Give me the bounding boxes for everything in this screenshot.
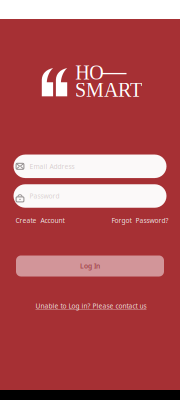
staticText: Forgot Password? xyxy=(111,216,168,225)
staticText: HO xyxy=(75,62,103,84)
staticText: SMART xyxy=(75,79,142,101)
staticText: Email Address xyxy=(29,162,74,171)
staticText: Password xyxy=(29,192,59,200)
button[interactable]: Create Account xyxy=(13,213,66,228)
button[interactable]: Unable to Log in? Please contact us xyxy=(33,299,148,313)
button[interactable]: Forgot Password? xyxy=(109,213,170,228)
staticText: Unable to Log in? Please contact us xyxy=(35,302,146,310)
button[interactable]: Log In xyxy=(16,255,164,276)
staticText: Log In xyxy=(80,262,100,270)
staticText: Create Account xyxy=(15,216,64,225)
